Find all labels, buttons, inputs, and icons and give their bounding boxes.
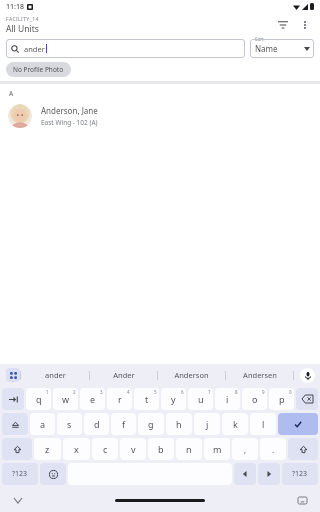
staticText: h <box>176 418 182 430</box>
button[interactable]: k <box>222 413 248 435</box>
staticText: Anderson <box>174 370 209 380</box>
button[interactable] <box>2 388 24 410</box>
button[interactable]: x <box>63 438 90 460</box>
button[interactable]: l <box>250 413 276 435</box>
button[interactable]: Switch keyboard <box>294 492 310 508</box>
button[interactable]: Toolbar <box>6 368 20 382</box>
button[interactable]: Ander <box>90 364 157 386</box>
button[interactable]: a <box>30 413 55 435</box>
button[interactable]: p <box>269 388 294 410</box>
staticText: g <box>148 418 154 430</box>
staticText: 5 <box>154 389 157 395</box>
button[interactable]: f <box>111 413 136 435</box>
staticText: . <box>272 444 275 455</box>
staticText: All Units <box>6 23 39 35</box>
button[interactable]: v <box>120 438 146 460</box>
staticText: e <box>90 393 96 405</box>
button[interactable]: s <box>57 413 82 435</box>
button[interactable] <box>2 438 32 460</box>
staticText: East Wing - 102 (A) <box>41 118 98 127</box>
staticText: x <box>74 443 79 455</box>
staticText: ander <box>45 370 66 380</box>
button[interactable] <box>2 413 28 435</box>
button[interactable] <box>278 413 318 435</box>
staticText: l <box>262 418 265 430</box>
button[interactable]: i <box>215 388 240 410</box>
staticText: b <box>158 443 164 455</box>
button[interactable] <box>258 463 280 485</box>
button[interactable]: Name <box>250 39 314 58</box>
button[interactable]: b <box>148 438 174 460</box>
staticText: o <box>252 393 258 405</box>
staticText: ?123 <box>12 469 28 479</box>
button[interactable]: n <box>176 438 202 460</box>
button[interactable]: h <box>166 413 192 435</box>
button[interactable] <box>288 438 318 460</box>
staticText: 1 <box>46 389 49 395</box>
button[interactable]: ander <box>21 364 89 386</box>
button[interactable]: u <box>188 388 213 410</box>
button[interactable]: t <box>134 388 159 410</box>
button[interactable]: r <box>107 388 132 410</box>
button[interactable]: ?123 <box>2 463 38 485</box>
staticText: ander <box>24 44 45 54</box>
button[interactable]: e <box>80 388 105 410</box>
staticText: c <box>103 443 108 455</box>
staticText: 6 <box>181 389 184 395</box>
staticText: p <box>279 393 285 405</box>
staticText: ?123 <box>292 469 308 479</box>
staticText: f <box>122 418 126 430</box>
button[interactable]: j <box>194 413 220 435</box>
staticText: y <box>171 393 176 405</box>
button[interactable]: Hide keyboard <box>10 492 26 508</box>
button[interactable]: Anderson, Jane <box>0 101 320 131</box>
staticText: FACILITY_14 <box>6 15 39 22</box>
staticText: n <box>186 443 192 455</box>
staticText: , <box>244 444 247 455</box>
staticText: r <box>118 393 122 405</box>
button[interactable]: ?123 <box>282 463 318 485</box>
staticText: j <box>206 418 209 430</box>
button[interactable]: . <box>260 438 286 460</box>
staticText: d <box>94 418 100 430</box>
button[interactable]: z <box>34 438 61 460</box>
button[interactable]: q <box>26 388 51 410</box>
button[interactable] <box>296 388 318 410</box>
staticText: v <box>131 443 136 455</box>
staticText: 4 <box>127 389 130 395</box>
staticText: a <box>40 418 46 430</box>
button[interactable]: No Profile Photo <box>6 62 71 77</box>
staticText: Anderson, Jane <box>41 105 98 116</box>
button[interactable]: d <box>84 413 109 435</box>
staticText: i <box>226 393 229 405</box>
staticText: q <box>36 393 42 405</box>
staticText: Ander <box>113 370 135 380</box>
button[interactable]: o <box>242 388 267 410</box>
staticText: Name <box>255 43 304 54</box>
button[interactable]: Filter <box>272 14 294 36</box>
button[interactable] <box>40 463 66 485</box>
staticText: Andersen <box>243 370 277 380</box>
button[interactable]: Voice input <box>294 364 320 386</box>
staticText: 2 <box>73 389 76 395</box>
button[interactable]: ander <box>6 39 245 58</box>
button[interactable]: w <box>53 388 78 410</box>
button[interactable]: , <box>232 438 258 460</box>
staticText: u <box>198 393 204 405</box>
staticText: m <box>213 443 222 455</box>
staticText: Sort <box>255 36 264 42</box>
button[interactable]: y <box>161 388 186 410</box>
staticText: w <box>62 393 70 405</box>
staticText: 3 <box>100 389 103 395</box>
button[interactable]: Anderson <box>158 364 225 386</box>
button[interactable]: Andersen <box>226 364 293 386</box>
button[interactable]: g <box>138 413 164 435</box>
button[interactable]: m <box>204 438 230 460</box>
button[interactable] <box>234 463 256 485</box>
staticText: A <box>9 89 14 98</box>
staticText: 11:18 <box>6 2 24 12</box>
button[interactable]: c <box>92 438 118 460</box>
button[interactable]: More options <box>294 14 316 36</box>
staticText: k <box>233 418 238 430</box>
